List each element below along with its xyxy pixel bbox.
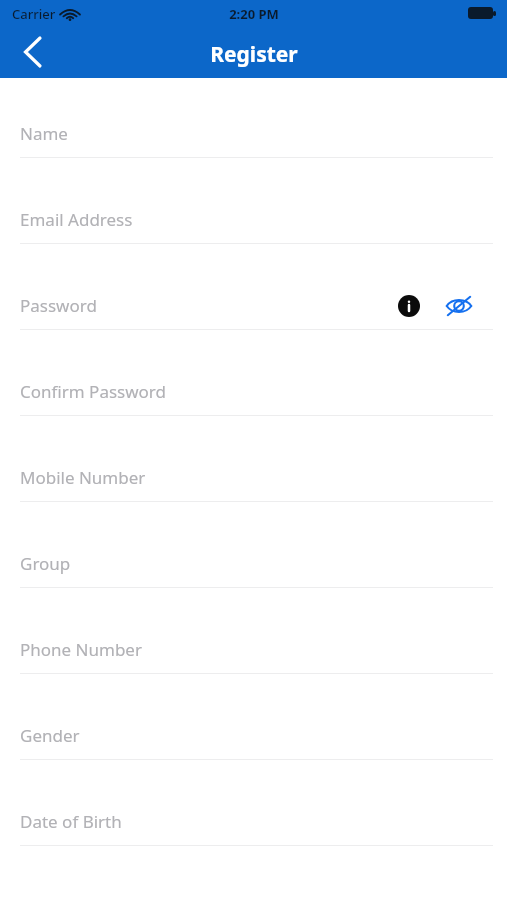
staticText: Group [20,552,71,575]
button[interactable]: Phone Number [0,620,507,706]
button[interactable]: Mobile Number [0,448,507,534]
button[interactable]: Name [0,104,507,190]
button[interactable]: Gender [0,706,507,792]
staticText: Confirm Password [20,380,166,403]
staticText: Gender [20,724,80,747]
button[interactable]: Group [0,534,507,620]
button[interactable]: Date of Birth [0,792,507,878]
staticText: Mobile Number [20,466,146,489]
staticText: Phone Number [20,638,142,661]
button[interactable]: Show password [439,286,479,326]
staticText: Password [20,294,97,317]
staticText: Date of Birth [20,810,122,833]
staticText: Register [210,40,298,69]
button[interactable]: Back [8,28,56,76]
staticText: Email Address [20,208,133,231]
staticText: Name [20,122,68,145]
staticText: Carrier [12,5,56,23]
button[interactable]: Email Address [0,190,507,276]
button[interactable]: Confirm Password [0,362,507,448]
button[interactable]: Password [0,276,507,362]
staticText: 2:20 PM [229,5,279,23]
button[interactable]: Password information [389,286,429,326]
